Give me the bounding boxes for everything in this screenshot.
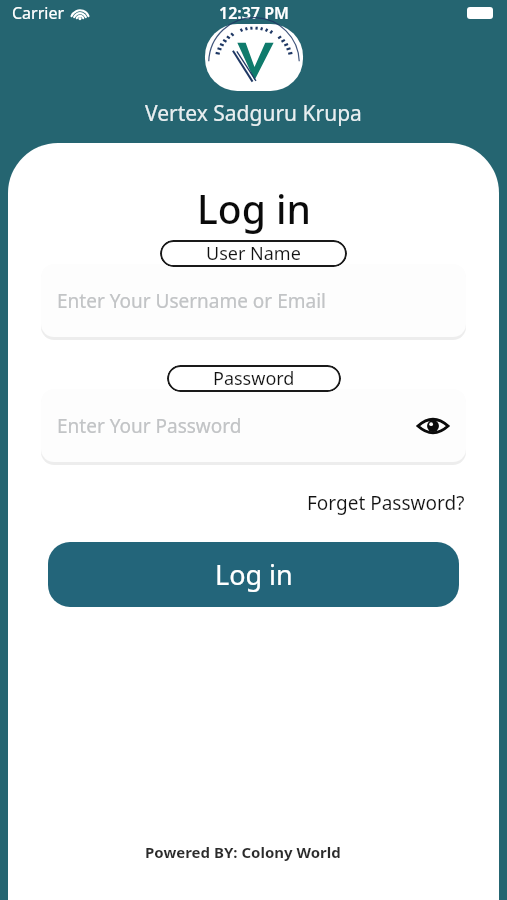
button[interactable]: Show password [414, 407, 452, 445]
button[interactable]: Log in [48, 542, 459, 607]
staticText: Carrier [12, 2, 65, 24]
button[interactable]: User Name [160, 240, 347, 267]
staticText: Vertex Sadguru Krupa [145, 99, 362, 128]
button[interactable]: Forget Password? [305, 488, 467, 518]
staticText: Forget Password? [307, 490, 465, 516]
staticText: Enter Your Username or Email [57, 288, 326, 314]
staticText: Powered BY: Colony World [145, 842, 341, 862]
staticText: Enter Your Password [57, 413, 242, 439]
button[interactable]: Enter Your Username or Email [41, 264, 466, 337]
button[interactable]: Enter Your Password [41, 389, 466, 462]
staticText: Log in [215, 556, 293, 593]
staticText: Password [213, 366, 295, 391]
staticText: 12:37 PM [219, 2, 289, 24]
staticText: User Name [206, 241, 301, 266]
button[interactable]: Password [167, 365, 341, 392]
staticText: Log in [197, 182, 311, 235]
